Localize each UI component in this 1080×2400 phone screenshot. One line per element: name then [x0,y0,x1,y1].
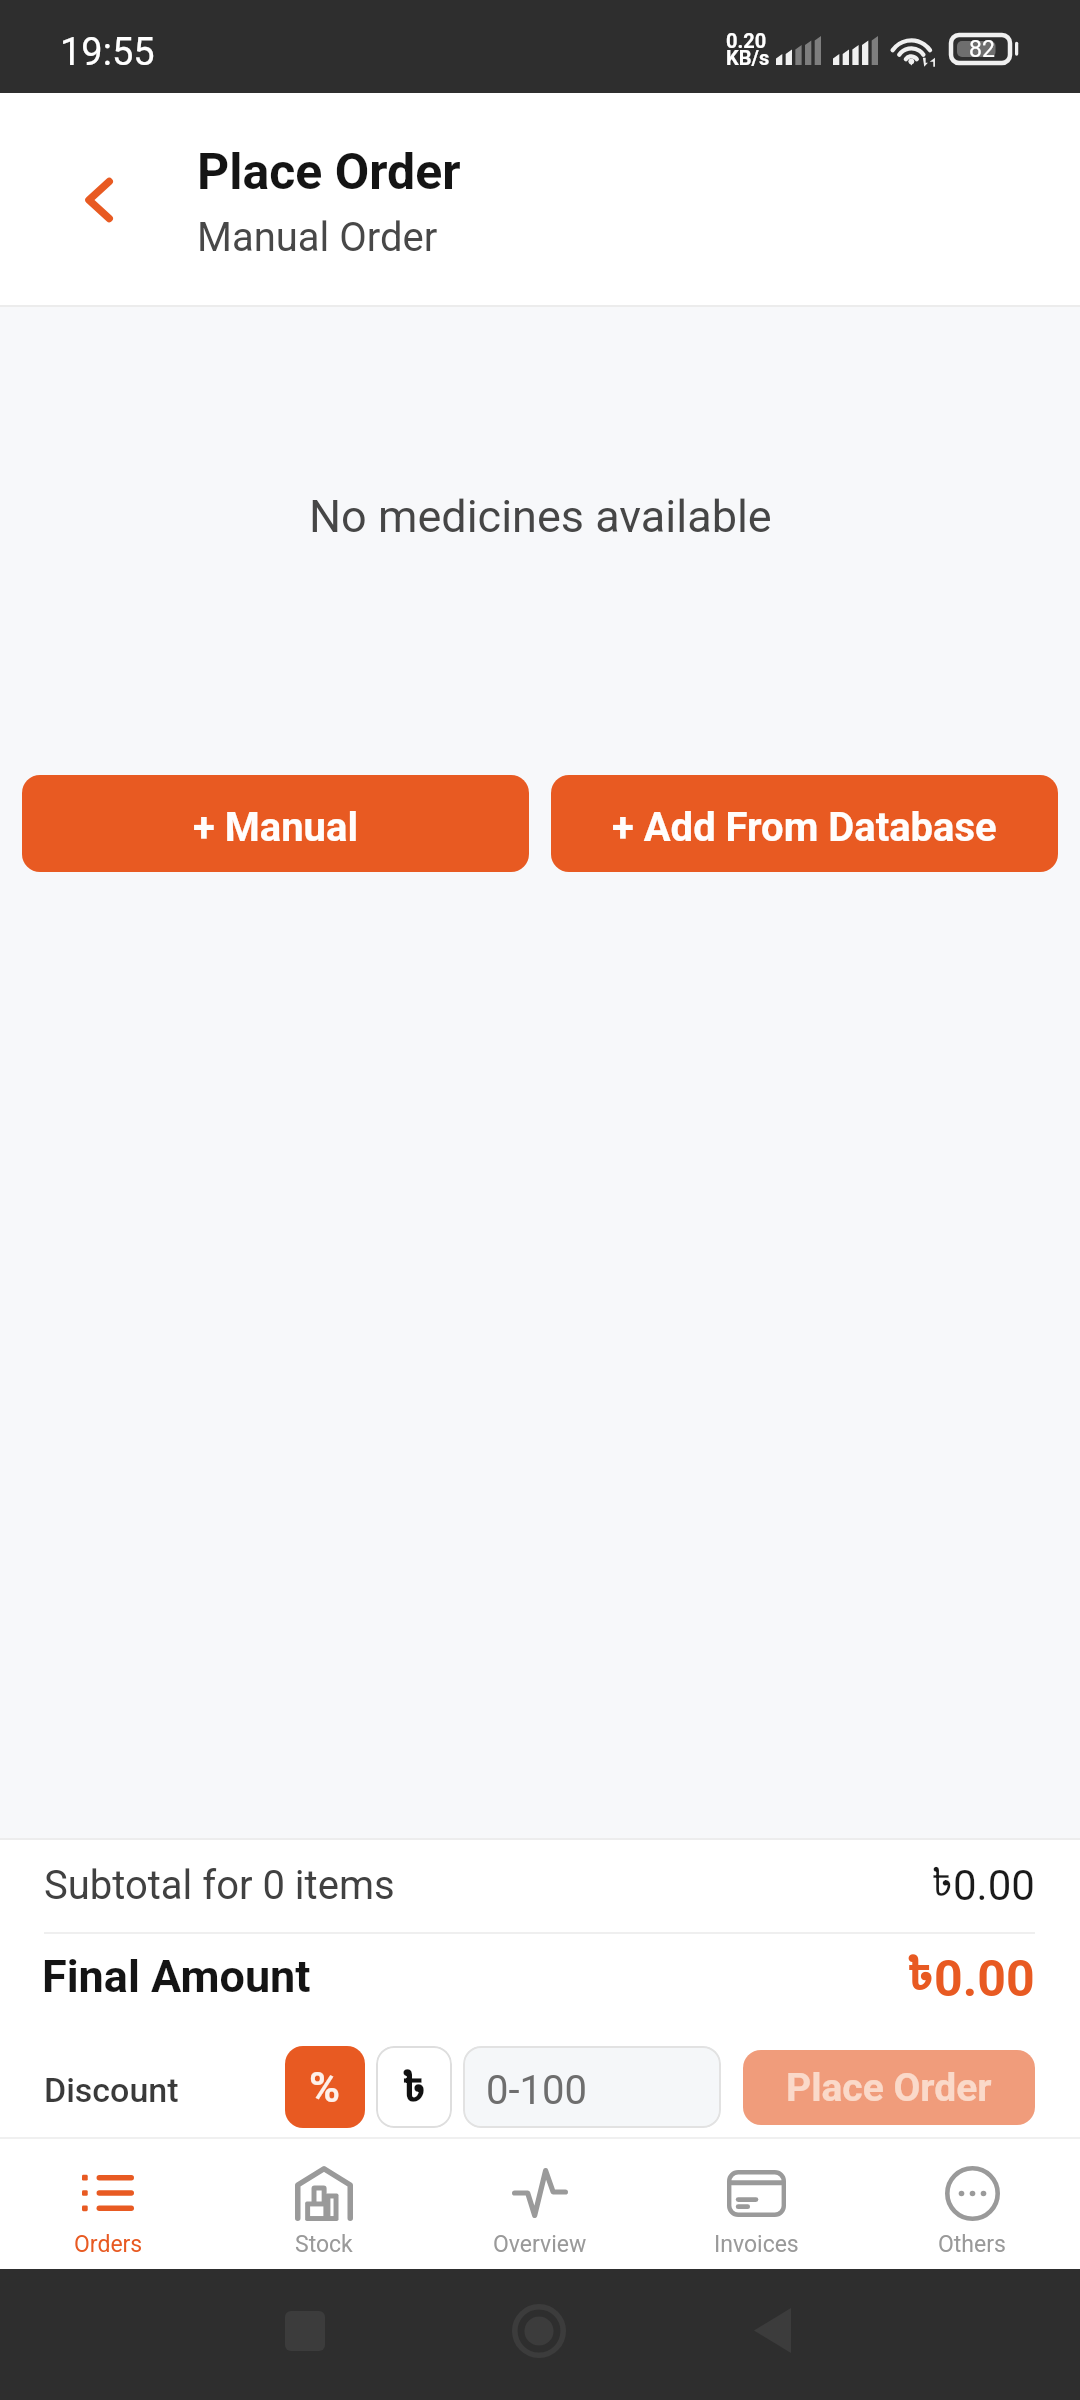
staticText: Place Order [786,2065,992,2111]
staticText: Orders [74,2231,143,2258]
button[interactable]: Home [512,2304,566,2358]
staticText: + Add From Database [612,804,997,851]
staticText: Invoices [714,2231,799,2258]
button[interactable]: Overview [432,2139,648,2269]
staticText: ৳ [402,2065,426,2117]
button[interactable]: % [285,2046,365,2128]
staticText: Subtotal for 0 items [44,1862,395,1909]
button[interactable]: 0-100 [463,2046,721,2128]
staticText: Discount [44,2070,179,2110]
staticText: ৳ [931,1861,953,1910]
button[interactable]: Stock [216,2139,432,2269]
button[interactable]: + Add From Database [551,775,1058,872]
staticText: Others [938,2231,1006,2258]
button[interactable]: Place Order [743,2050,1035,2125]
button[interactable]: Back [52,152,148,248]
staticText: Final Amount [42,1950,311,2002]
staticText: 19:55 [60,30,155,75]
staticText: Overview [493,2231,587,2258]
button[interactable]: Orders [0,2139,216,2269]
staticText: Place Order [197,143,461,202]
staticText: No medicines available [309,490,772,543]
staticText: Stock [295,2231,353,2258]
staticText: ৳ [907,1950,934,2002]
staticText: 0.00 [953,1861,1035,1910]
button[interactable]: ৳ [376,2046,452,2128]
button[interactable]: Others [864,2139,1080,2269]
staticText: 0-100 [486,2067,587,2114]
button[interactable]: + Manual [22,775,529,872]
staticText: % [309,2063,341,2112]
staticText: Manual Order [197,214,438,261]
staticText: 0.00 [934,1950,1035,2002]
button[interactable]: Invoices [648,2139,864,2269]
staticText: + Manual [193,804,358,851]
button[interactable]: Back [754,2308,791,2353]
staticText: 82 [969,36,995,63]
staticText: 0.20 KB/s [726,29,770,70]
